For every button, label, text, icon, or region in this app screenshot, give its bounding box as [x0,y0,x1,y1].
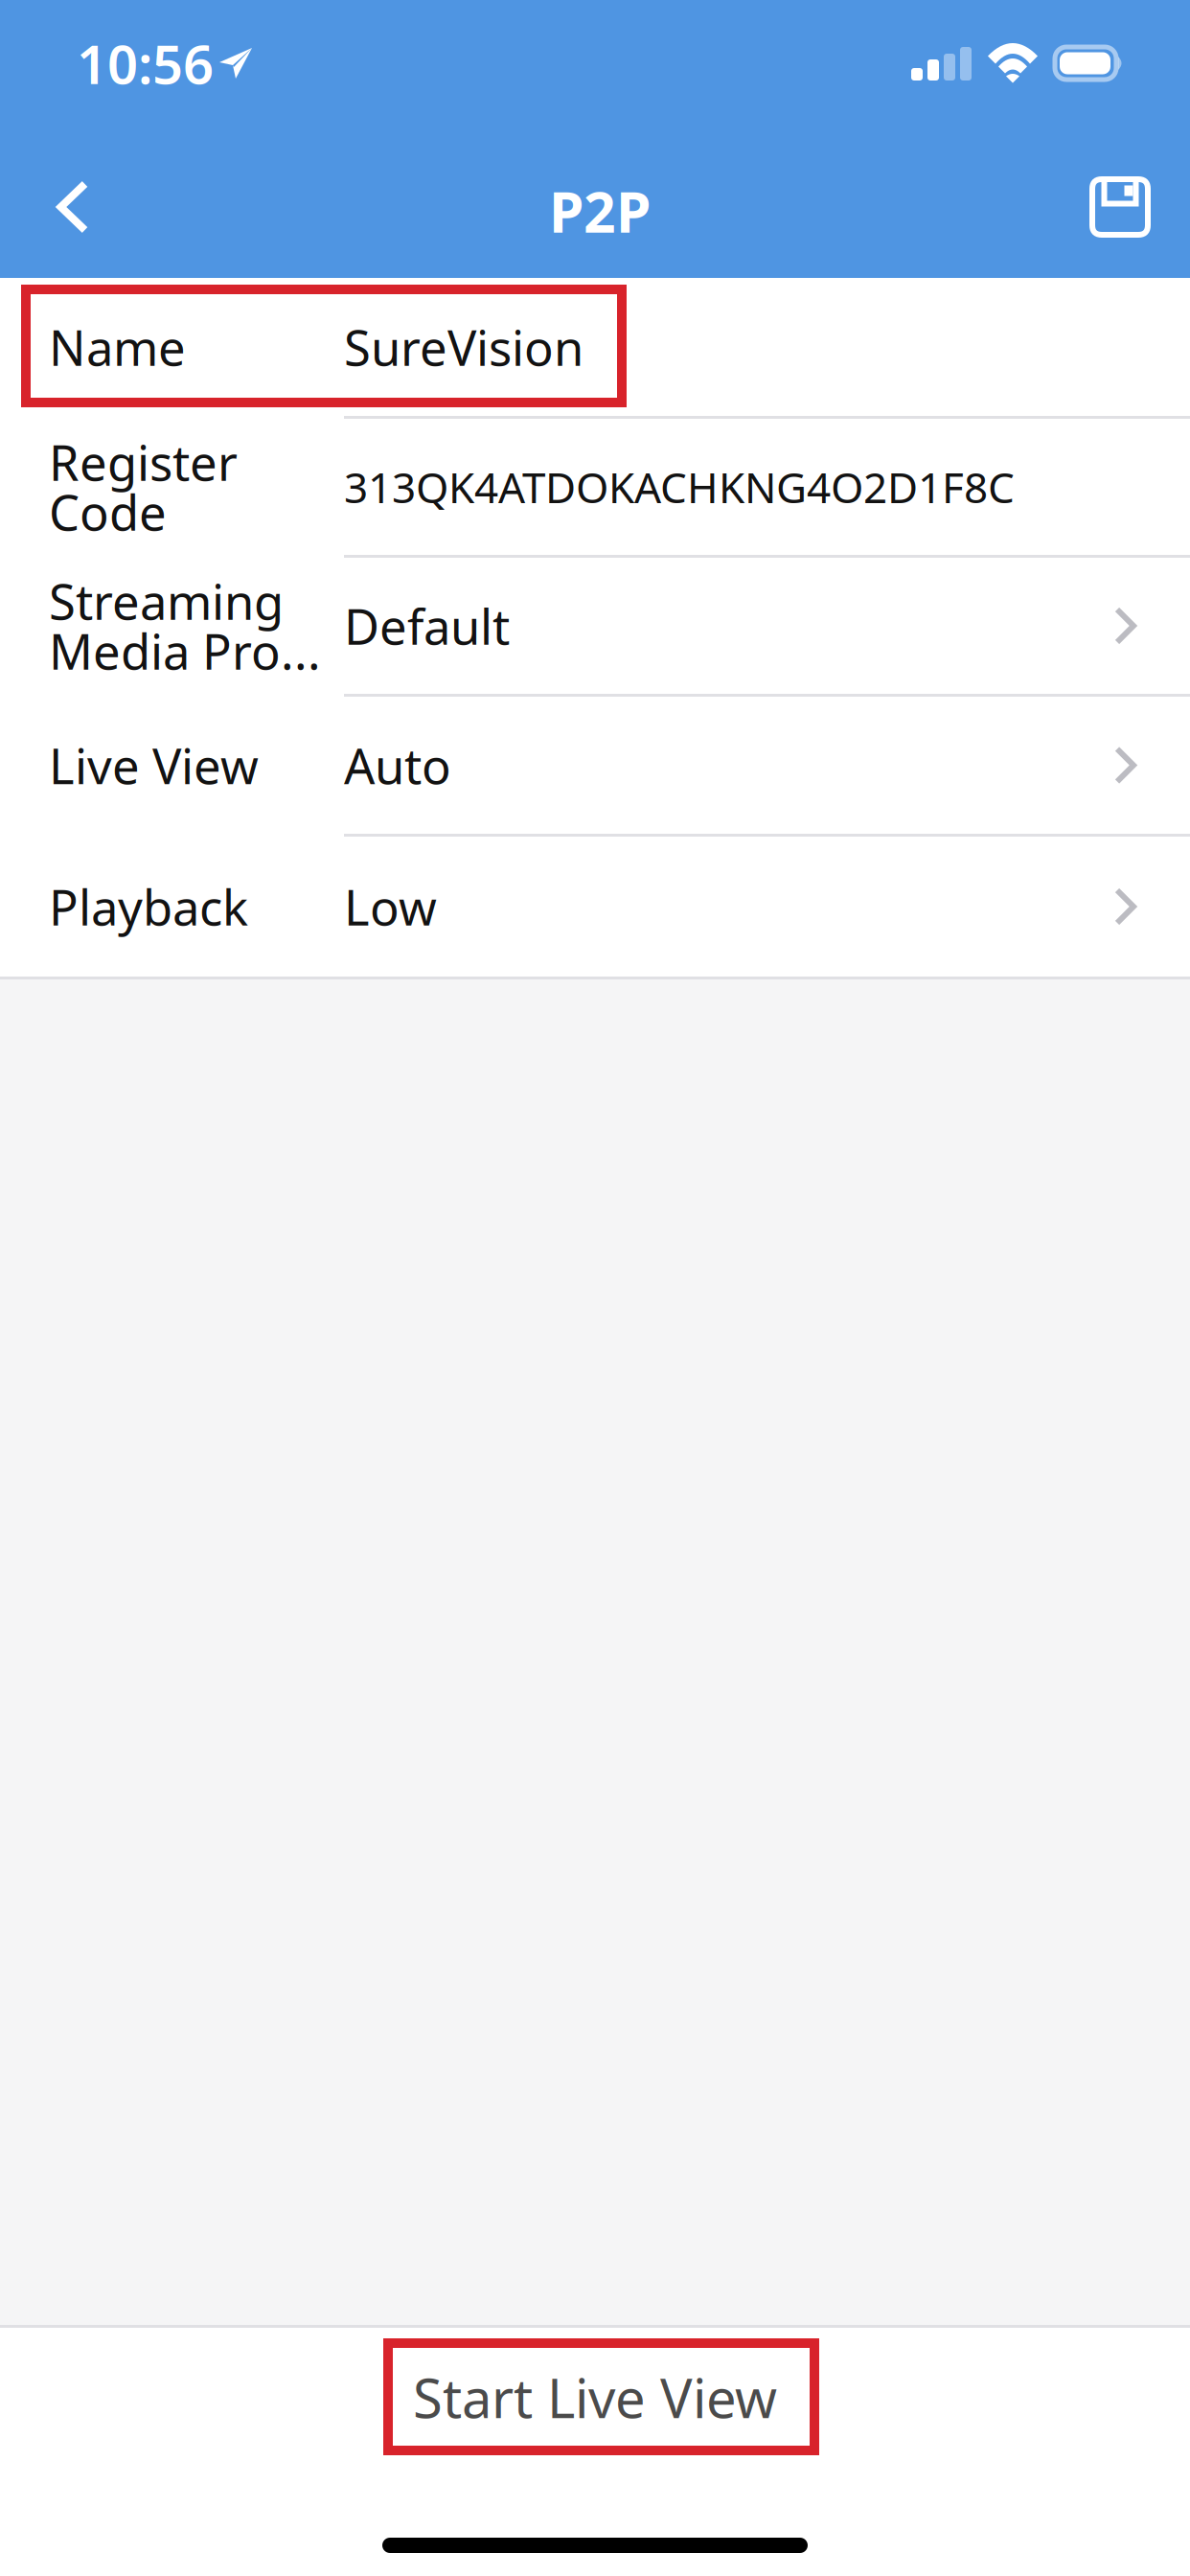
staticText: Live View [49,733,259,798]
button[interactable]: Live View [0,697,1190,834]
button[interactable]: Playback [0,837,1190,977]
staticText: P2P [549,173,651,248]
staticText: Auto [344,733,451,798]
staticText: Media Pro... [49,619,321,683]
staticText: SureVision [344,315,584,379]
staticText: Code [49,480,167,544]
button[interactable]: Streaming [0,558,1190,694]
button[interactable]: Save [1057,139,1183,265]
staticText: Start Live View [413,2362,777,2433]
button[interactable]: Name [0,278,1190,416]
staticText: Playback [49,874,248,939]
staticText: Streaming [49,569,284,633]
button[interactable]: Start Live View [0,2328,1190,2459]
staticText: Name [49,315,186,379]
staticText: 10:56 [77,28,214,99]
staticText: 313QK4ATDOKACHKNG4O2D1F8C [344,459,1015,515]
staticText: Low [344,874,437,939]
staticText: Register [49,430,238,494]
button[interactable]: Register [0,419,1190,555]
button[interactable]: Back [16,139,127,265]
staticText: Default [344,594,510,658]
